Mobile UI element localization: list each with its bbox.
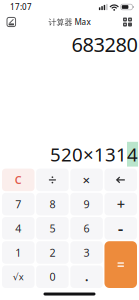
staticText: 520×131 bbox=[50, 142, 127, 167]
button[interactable]: 5 bbox=[36, 217, 69, 240]
button[interactable]: + bbox=[104, 193, 137, 215]
staticText: + bbox=[117, 194, 125, 214]
button[interactable]: C bbox=[2, 169, 34, 191]
button[interactable]: 除 bbox=[36, 169, 69, 191]
staticText: × bbox=[83, 171, 91, 189]
staticText: - bbox=[118, 217, 124, 240]
button[interactable]: 2 bbox=[36, 241, 69, 264]
button[interactable]: 历史记录 bbox=[0, 17, 16, 27]
button[interactable]: 3 bbox=[70, 241, 103, 264]
staticText: 9 bbox=[84, 197, 90, 211]
staticText: 8 bbox=[49, 197, 55, 211]
button[interactable]: 9 bbox=[70, 193, 103, 215]
staticText: 计算器 Max bbox=[48, 17, 90, 27]
staticText: 7 bbox=[15, 197, 21, 211]
button[interactable]: 4 bbox=[2, 217, 34, 240]
staticText: 2 bbox=[49, 245, 55, 260]
staticText: . bbox=[85, 269, 88, 285]
staticText: 17:07 bbox=[10, 2, 32, 12]
button[interactable]: 7 bbox=[2, 193, 34, 215]
button[interactable]: 退格 bbox=[104, 169, 137, 191]
staticText: 3 bbox=[84, 245, 90, 260]
button[interactable]: 6 bbox=[70, 217, 103, 240]
button[interactable]: × bbox=[70, 169, 103, 191]
staticText: 0 bbox=[49, 270, 55, 284]
button[interactable]: . bbox=[70, 265, 103, 288]
button[interactable]: - bbox=[104, 217, 137, 240]
staticText: 4 bbox=[127, 142, 138, 167]
staticText: √x bbox=[13, 270, 24, 283]
button[interactable]: 等于 bbox=[104, 241, 137, 288]
staticText: 6 bbox=[84, 221, 90, 235]
staticText: 4 bbox=[15, 221, 21, 235]
button[interactable]: 1 bbox=[2, 241, 34, 264]
button[interactable]: √x bbox=[2, 265, 34, 288]
button[interactable]: 0 bbox=[36, 265, 69, 288]
staticText: 1 bbox=[15, 245, 21, 260]
button[interactable]: 更多应用 bbox=[123, 17, 139, 26]
staticText: 5 bbox=[49, 221, 55, 235]
staticText: C bbox=[15, 173, 22, 187]
staticText: 683280 bbox=[71, 31, 137, 58]
button[interactable]: 8 bbox=[36, 193, 69, 215]
